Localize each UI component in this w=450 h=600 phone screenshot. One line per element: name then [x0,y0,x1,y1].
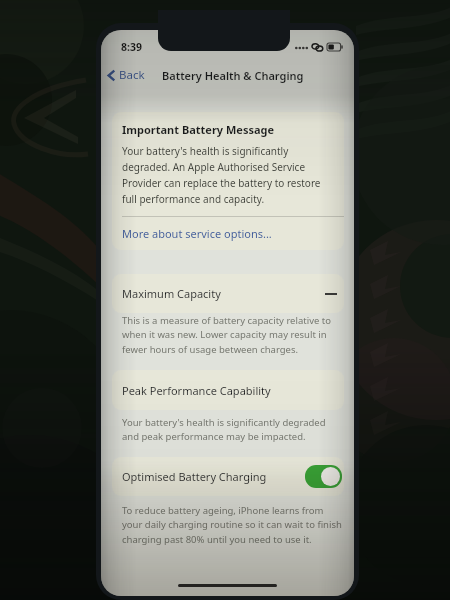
staticText: This is a measure of battery capacity re… [122,314,344,356]
staticText: Your battery's health is significantly d… [122,416,344,443]
staticText: More about service options... [122,226,272,241]
staticText: Optimised Battery Charging [122,469,267,484]
button[interactable]: Optimised Battery Charging [112,457,344,496]
button[interactable]: Back [101,63,150,87]
staticText: Peak Performance Capability [122,383,271,398]
other: Optimised Battery Charging toggle [305,465,342,488]
staticText: Maximum Capacity [122,286,221,301]
button[interactable]: More about service options... [112,217,344,250]
button[interactable]: Peak Performance Capability [112,370,344,410]
staticText: Battery Health & Charging [162,68,304,83]
staticText: Important Battery Message [122,122,275,137]
staticText: Your battery's health is significantly d… [122,144,332,206]
other: Back [108,70,115,81]
staticText: Back [119,67,145,83]
staticText: 8:39 [121,40,142,54]
staticText: To reduce battery ageing, iPhone learns … [122,504,344,546]
button[interactable]: Maximum Capacity [112,274,344,313]
